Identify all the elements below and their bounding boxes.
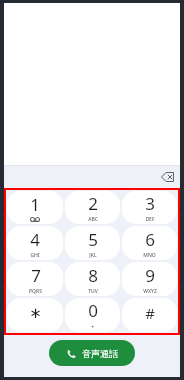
staticText: 4 xyxy=(30,228,40,251)
staticText: 9 xyxy=(145,264,155,287)
staticText: + xyxy=(91,323,95,331)
button[interactable]: 2 xyxy=(65,191,120,224)
staticText: TUV xyxy=(88,288,98,295)
button[interactable]: ∗ xyxy=(7,298,63,332)
button[interactable]: 6 xyxy=(122,226,177,260)
button[interactable]: # xyxy=(122,298,177,332)
staticText: MNO xyxy=(143,252,156,259)
staticText: 0 xyxy=(88,299,98,322)
button[interactable]: 9 xyxy=(122,262,177,296)
staticText: 2 xyxy=(88,192,98,215)
staticText: 音声通話 xyxy=(82,348,118,359)
staticText: 6 xyxy=(145,228,155,251)
staticText: ABC xyxy=(88,216,98,223)
button[interactable]: 音声通話 xyxy=(49,340,135,366)
staticText: WXYZ xyxy=(143,288,157,295)
staticText: 7 xyxy=(31,264,41,287)
button[interactable]: 5 xyxy=(65,226,120,260)
button[interactable]: 1 xyxy=(7,191,63,224)
staticText: PQRS xyxy=(29,288,42,295)
staticText: DEF xyxy=(145,216,155,223)
button[interactable]: 4 xyxy=(7,226,63,260)
button[interactable]: 3 xyxy=(122,191,177,224)
staticText: # xyxy=(145,303,155,323)
staticText: 1 xyxy=(30,193,40,216)
staticText: 5 xyxy=(88,228,98,251)
staticText: 3 xyxy=(145,192,155,215)
staticText: ∗ xyxy=(29,304,42,321)
button[interactable]: 0 xyxy=(65,298,120,332)
staticText: JKL xyxy=(89,252,97,259)
staticText: 8 xyxy=(88,264,98,287)
button[interactable]: Backspace xyxy=(158,168,176,186)
button[interactable]: 8 xyxy=(65,262,120,296)
button[interactable]: 7 xyxy=(7,262,63,296)
staticText: GHI xyxy=(30,252,40,259)
